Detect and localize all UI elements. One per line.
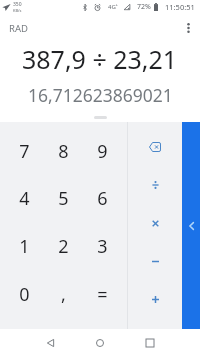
- staticText: 3: [97, 234, 108, 259]
- button[interactable]: 8: [44, 128, 83, 175]
- button[interactable]: Multiply: [128, 204, 182, 242]
- staticText: ,: [61, 282, 66, 307]
- button[interactable]: Plus: [128, 280, 182, 318]
- button[interactable]: Divide: [128, 166, 182, 204]
- staticText: 2: [58, 234, 69, 259]
- staticText: 387,9 ÷ 23,21: [22, 42, 178, 76]
- button[interactable]: Home: [75, 329, 125, 356]
- button[interactable]: 3: [83, 222, 122, 270]
- staticText: 350: [13, 1, 22, 8]
- staticText: 0: [19, 282, 30, 307]
- staticText: 72%: [137, 2, 151, 12]
- button[interactable]: 5: [44, 175, 83, 222]
- staticText: =: [97, 282, 108, 307]
- staticText: 4G⁺: [108, 3, 118, 11]
- button[interactable]: ,: [44, 270, 83, 318]
- button[interactable]: 6: [83, 175, 122, 222]
- button[interactable]: 7: [5, 128, 44, 175]
- staticText: KB/s: [13, 8, 22, 13]
- staticText: 16,712623869021: [28, 83, 173, 107]
- button[interactable]: Minus: [128, 242, 182, 280]
- button[interactable]: 2: [44, 222, 83, 270]
- button[interactable]: 0: [5, 270, 44, 318]
- staticText: 6: [97, 186, 108, 211]
- staticText: 9: [97, 139, 108, 164]
- button[interactable]: RAD: [0, 15, 37, 41]
- button[interactable]: =: [83, 270, 122, 318]
- button[interactable]: 4: [5, 175, 44, 222]
- staticText: 11:50:51: [165, 2, 195, 12]
- staticText: 8: [58, 139, 69, 164]
- staticText: 5: [58, 186, 69, 211]
- staticText: 4: [19, 186, 30, 211]
- button[interactable]: 9: [83, 128, 122, 175]
- staticText: RAD: [9, 22, 28, 35]
- button[interactable]: Back: [25, 329, 75, 356]
- button[interactable]: More options: [176, 16, 200, 40]
- button[interactable]: 1: [5, 222, 44, 270]
- button[interactable]: Recent apps: [125, 329, 175, 356]
- button[interactable]: Backspace: [128, 128, 182, 166]
- button[interactable]: Expand panel: [182, 122, 200, 329]
- staticText: 1: [19, 234, 30, 259]
- staticText: 7: [19, 139, 30, 164]
